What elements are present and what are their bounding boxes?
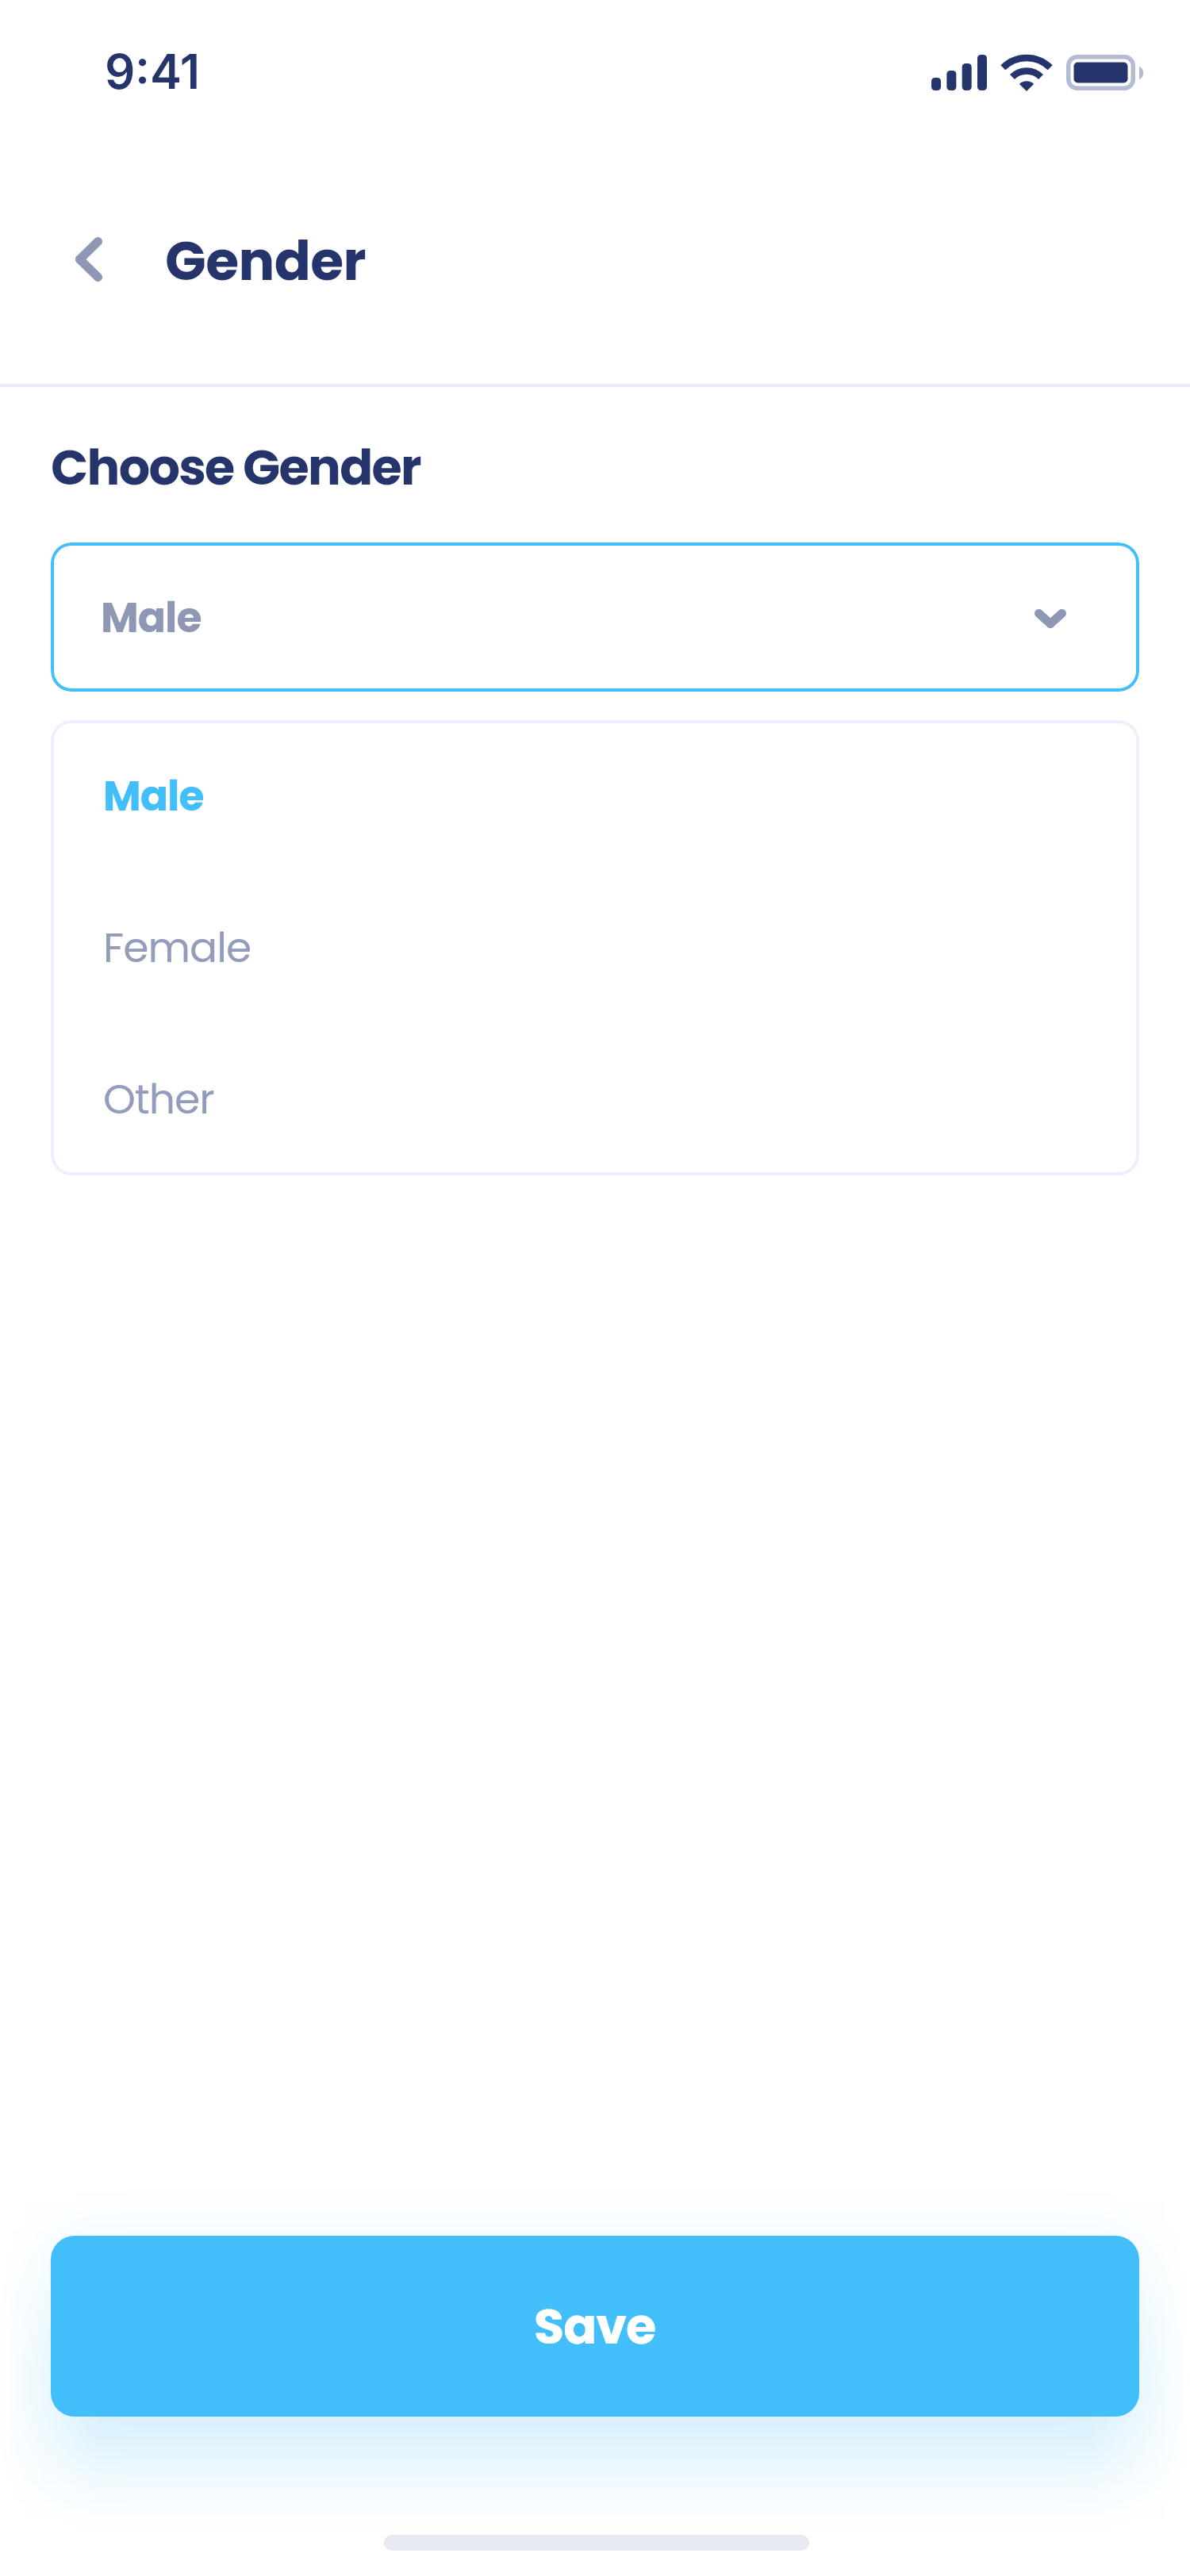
button[interactable]: Male [51,720,1139,872]
staticText: Female [103,918,251,976]
staticText: 9:41 [105,43,200,101]
staticText: Male [103,767,204,825]
button[interactable]: Save [51,2236,1139,2417]
staticText: Other [103,1070,214,1128]
button[interactable]: Male [51,542,1139,692]
staticText: Choose Gender [51,433,420,502]
staticText: Save [534,2292,656,2361]
button[interactable]: Other [51,1023,1139,1175]
button[interactable]: Back [57,228,121,291]
staticText: Male [101,588,202,646]
staticText: Gender [165,224,367,299]
button[interactable]: Female [51,872,1139,1023]
